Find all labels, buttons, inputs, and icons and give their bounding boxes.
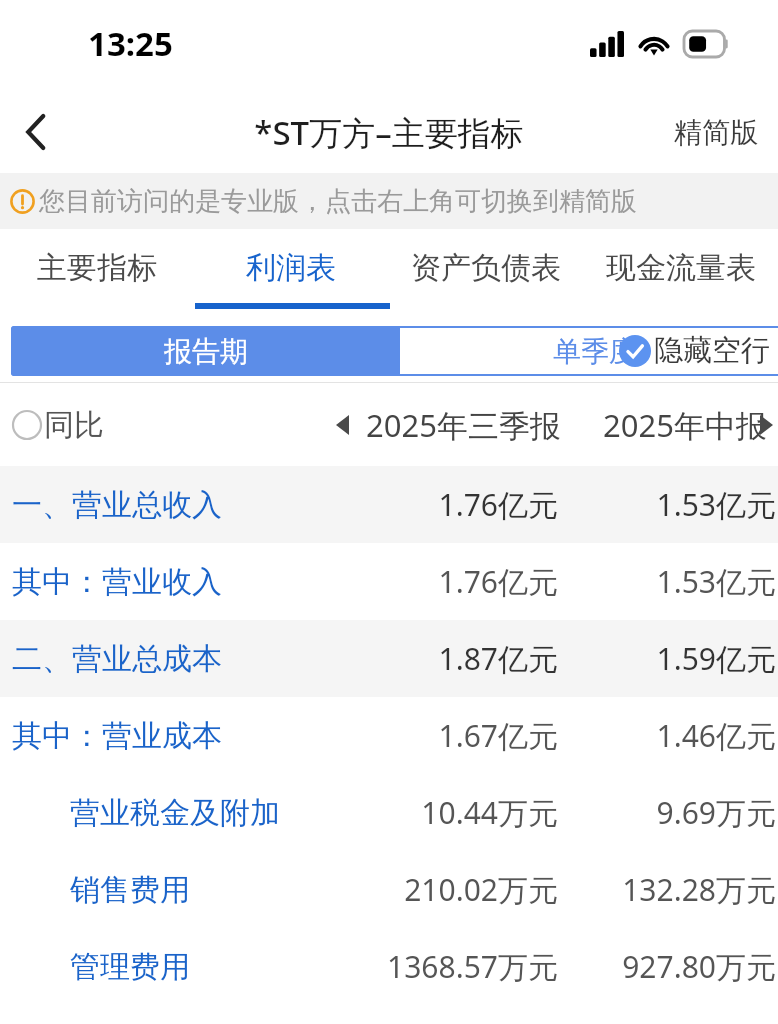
button[interactable]: Back [0, 96, 72, 168]
staticText: 管理费用 [70, 948, 190, 986]
staticText: 1.46亿元 [656, 715, 776, 756]
staticText: 13:25 [88, 21, 173, 66]
staticText: 同比 [44, 406, 104, 444]
staticText: 主要指标 [37, 249, 157, 287]
staticText: 单季度 [553, 334, 637, 369]
staticText: 营业税金及附加 [70, 794, 280, 832]
staticText: 隐藏空行 [654, 332, 770, 369]
button[interactable]: Next period [755, 414, 777, 436]
staticText: 现金流量表 [606, 249, 756, 287]
button[interactable]: 利润表 [194, 229, 388, 307]
staticText: 2025年中报 [603, 404, 767, 446]
button[interactable]: 其中：营业成本 [0, 697, 778, 774]
button[interactable]: 其中：营业收入 [0, 543, 778, 620]
staticText: 其中：营业成本 [12, 717, 222, 755]
staticText: 精简版 [674, 115, 758, 150]
staticText: 132.28万元 [622, 869, 776, 910]
staticText: 1.87亿元 [438, 638, 558, 679]
button[interactable]: 主要指标 [0, 229, 194, 307]
button[interactable]: 报告期 [11, 326, 400, 376]
staticText: 2025年三季报 [366, 404, 561, 446]
staticText: 1.76亿元 [438, 561, 558, 602]
staticText: 1.59亿元 [656, 638, 776, 679]
staticText: 二、营业总成本 [12, 640, 222, 678]
staticText: 其中：营业收入 [12, 563, 222, 601]
button[interactable]: 单季度 [400, 326, 778, 376]
staticText: 销售费用 [70, 871, 190, 909]
staticText: 1.76亿元 [438, 484, 558, 525]
button[interactable]: 二、营业总成本 [0, 620, 778, 697]
staticText: 您目前访问的是专业版，点击右上角可切换到精简版 [39, 185, 637, 218]
staticText: 927.80万元 [622, 946, 776, 987]
staticText: 210.02万元 [404, 869, 558, 910]
staticText: 9.69万元 [656, 792, 776, 833]
button[interactable]: 管理费用 [0, 928, 778, 1005]
button[interactable]: 营业税金及附加 [0, 774, 778, 851]
button[interactable]: 销售费用 [0, 851, 778, 928]
button[interactable]: 资产负债表 [388, 229, 583, 307]
staticText: 1.67亿元 [438, 715, 558, 756]
button[interactable]: 同比 [12, 406, 104, 444]
staticText: 报告期 [164, 334, 248, 369]
staticText: 10.44万元 [421, 792, 558, 833]
button[interactable]: 精简版 [654, 107, 778, 158]
button[interactable]: 隐藏空行 [611, 326, 778, 375]
staticText: 利润表 [246, 249, 336, 287]
staticText: 1.53亿元 [656, 561, 776, 602]
staticText: *ST万方–主要指标 [254, 110, 524, 155]
button[interactable]: 一、营业总收入 [0, 466, 778, 543]
staticText: 1.53亿元 [656, 484, 776, 525]
staticText: 1368.57万元 [387, 946, 558, 987]
staticText: 一、营业总收入 [12, 486, 222, 524]
button[interactable]: Previous period [328, 411, 356, 439]
button[interactable]: 现金流量表 [583, 229, 778, 307]
staticText: 资产负债表 [411, 249, 561, 287]
